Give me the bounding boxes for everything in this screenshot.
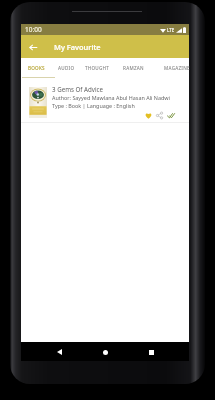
button[interactable]: Back — [51, 344, 67, 360]
button[interactable]: THOUGHT — [82, 58, 113, 78]
staticText: AUDIO — [58, 65, 75, 71]
staticText: MAGAZINE — [164, 65, 190, 71]
button[interactable]: Recent apps — [143, 344, 159, 360]
button[interactable]: 3 Gems Of Advice — [21, 78, 189, 122]
staticText: 10:00 — [25, 25, 42, 34]
button[interactable]: MAGAZINE — [153, 58, 201, 78]
button[interactable]: Home — [97, 344, 113, 360]
staticText: Type : Book | Language : English — [52, 102, 135, 109]
button[interactable]: Downloaded — [165, 109, 176, 120]
button[interactable]: Favourite — [143, 110, 153, 120]
button[interactable]: Share — [154, 110, 164, 120]
button[interactable]: AUDIO — [51, 58, 82, 78]
button[interactable]: RAMZAN — [113, 58, 153, 78]
staticText: Author: Sayyed Mawlana Abul Hasan Ali Na… — [52, 94, 170, 101]
button[interactable]: BOOKS — [21, 58, 51, 78]
button[interactable]: Back — [25, 39, 41, 55]
staticText: RAMZAN — [123, 65, 144, 71]
staticText: THOUGHT — [85, 65, 110, 71]
staticText: My Favourite — [54, 42, 101, 52]
staticText: LTE — [167, 27, 175, 33]
staticText: BOOKS — [28, 65, 45, 71]
staticText: 3 Gems Of Advice — [52, 85, 104, 93]
